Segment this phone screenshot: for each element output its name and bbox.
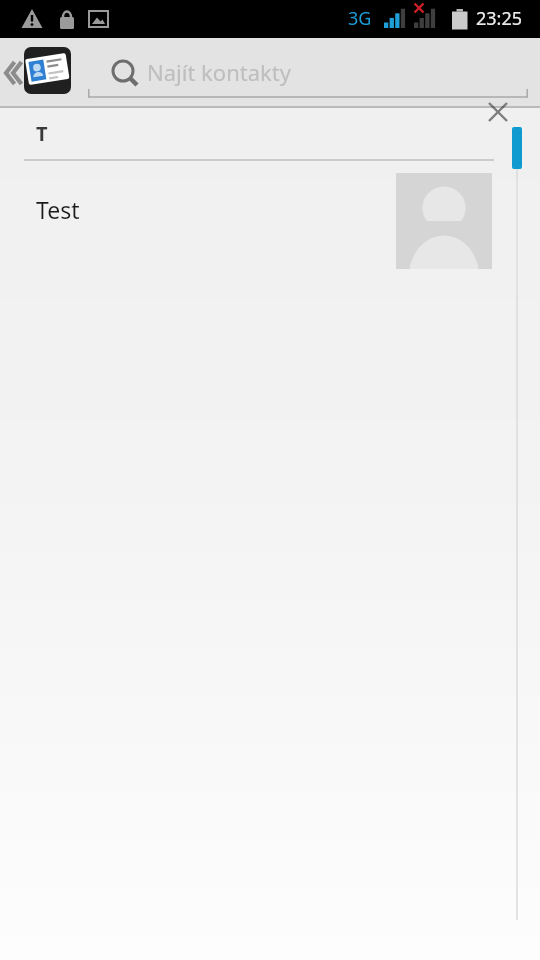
staticText: Test: [36, 194, 80, 225]
button[interactable]: Back to Contacts: [0, 38, 82, 108]
staticText: 23:25: [476, 6, 523, 31]
button[interactable]: Najít kontakty: [88, 38, 528, 108]
staticText: 3G: [348, 6, 372, 31]
staticText: Najít kontakty: [147, 57, 291, 87]
button[interactable]: Test: [0, 161, 540, 271]
button[interactable]: Clear search: [474, 88, 522, 136]
staticText: T: [36, 120, 48, 147]
